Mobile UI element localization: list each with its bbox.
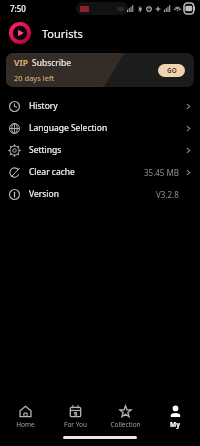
- staticText: History: [29, 100, 58, 112]
- staticText: VIP: [14, 57, 29, 69]
- staticText: Subscribe: [32, 57, 72, 69]
- button[interactable]: Collection: [100, 400, 150, 433]
- button[interactable]: My: [150, 400, 200, 433]
- staticText: Collection: [110, 420, 141, 429]
- staticText: My: [170, 420, 180, 429]
- staticText: 7:50: [10, 3, 26, 14]
- staticText: 20 days left: [14, 73, 55, 83]
- button[interactable]: Home: [0, 400, 50, 433]
- button[interactable]: VIP: [6, 53, 194, 87]
- button[interactable]: For You: [50, 400, 100, 433]
- button[interactable]: Version: [0, 183, 200, 205]
- button[interactable]: Language Selection: [0, 117, 200, 139]
- staticText: For You: [64, 420, 87, 429]
- button[interactable]: Clear cache: [0, 161, 200, 183]
- staticText: GO: [167, 66, 177, 75]
- staticText: Language Selection: [29, 122, 108, 134]
- staticText: V3.2.8: [156, 189, 179, 200]
- staticText: Clear cache: [29, 166, 75, 178]
- button[interactable]: Settings: [0, 139, 200, 161]
- staticText: Version: [29, 188, 59, 200]
- staticText: 35.45 MB: [144, 167, 179, 178]
- button[interactable]: History: [0, 95, 200, 117]
- button[interactable]: GO: [158, 64, 185, 77]
- staticText: Home: [16, 420, 35, 429]
- staticText: Settings: [29, 144, 62, 156]
- staticText: Tourists: [42, 26, 83, 41]
